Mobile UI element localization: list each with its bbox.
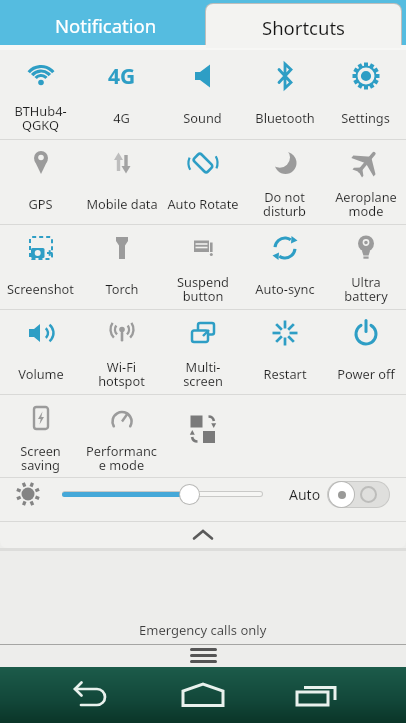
button[interactable]: Wi-Fi hotspot bbox=[81, 309, 162, 394]
button[interactable]: Power off bbox=[325, 309, 406, 394]
staticText: Ultra battery bbox=[344, 273, 388, 305]
button[interactable]: Restart bbox=[244, 309, 325, 394]
button[interactable]: 4G bbox=[81, 52, 162, 139]
staticText: Torch bbox=[105, 280, 139, 297]
staticText: Screenshot bbox=[7, 280, 74, 297]
button[interactable] bbox=[162, 394, 243, 477]
staticText: Auto-sync bbox=[255, 280, 315, 297]
button[interactable]: Shortcuts bbox=[206, 4, 401, 48]
button[interactable]: Multi- screen bbox=[162, 309, 243, 394]
button[interactable]: Torch bbox=[81, 224, 162, 309]
button[interactable]: Sound bbox=[162, 52, 243, 139]
button[interactable]: Settings bbox=[325, 52, 406, 139]
button[interactable]: Notification bbox=[3, 3, 209, 48]
staticText: Multi- screen bbox=[183, 358, 223, 390]
button[interactable]: Suspend button bbox=[162, 224, 243, 309]
staticText: Notification bbox=[55, 13, 157, 38]
staticText: Settings bbox=[341, 109, 390, 126]
button[interactable]: Screenshot bbox=[0, 224, 81, 309]
staticText: 4G bbox=[113, 109, 130, 126]
button[interactable]: BTHub4- QGKQ bbox=[0, 52, 81, 139]
button[interactable]: Volume bbox=[0, 309, 81, 394]
button[interactable]: GPS bbox=[0, 139, 81, 224]
staticText: Suspend button bbox=[177, 273, 229, 305]
button[interactable] bbox=[179, 484, 200, 505]
staticText: Auto bbox=[289, 485, 321, 504]
staticText: Sound bbox=[183, 109, 222, 126]
button[interactable]: Bluetooth bbox=[244, 52, 325, 139]
button[interactable] bbox=[183, 648, 223, 666]
staticText: Aeroplane mode bbox=[335, 188, 397, 220]
staticText: Screen saving bbox=[20, 442, 61, 474]
staticText: Shortcuts bbox=[262, 15, 345, 40]
staticText: Bluetooth bbox=[255, 109, 315, 126]
staticText: 4G bbox=[108, 62, 136, 91]
staticText: Performanc e mode bbox=[86, 442, 157, 474]
button[interactable]: Mobile data bbox=[81, 139, 162, 224]
staticText: Restart bbox=[263, 365, 307, 382]
staticText: Power off bbox=[337, 365, 395, 382]
button[interactable]: Performanc e mode bbox=[81, 394, 162, 477]
staticText: Wi-Fi hotspot bbox=[98, 358, 145, 390]
button[interactable]: Auto Rotate bbox=[162, 139, 243, 224]
button[interactable] bbox=[68, 680, 112, 718]
staticText: Mobile data bbox=[86, 195, 158, 212]
staticText: GPS bbox=[28, 195, 53, 212]
button[interactable]: Auto-sync bbox=[244, 224, 325, 309]
button[interactable] bbox=[181, 680, 225, 718]
staticText: BTHub4- QGKQ bbox=[14, 102, 67, 134]
staticText: Auto Rotate bbox=[167, 195, 239, 212]
button[interactable]: Do not disturb bbox=[244, 139, 325, 224]
button[interactable] bbox=[0, 521, 406, 548]
button[interactable]: Ultra battery bbox=[325, 224, 406, 309]
staticText: Do not disturb bbox=[263, 188, 306, 220]
button[interactable]: Aeroplane mode bbox=[325, 139, 406, 224]
button[interactable]: Screen saving bbox=[0, 394, 81, 477]
staticText: Emergency calls only bbox=[139, 621, 267, 639]
staticText: Volume bbox=[18, 365, 64, 382]
button[interactable] bbox=[294, 680, 338, 718]
button[interactable] bbox=[327, 481, 390, 508]
